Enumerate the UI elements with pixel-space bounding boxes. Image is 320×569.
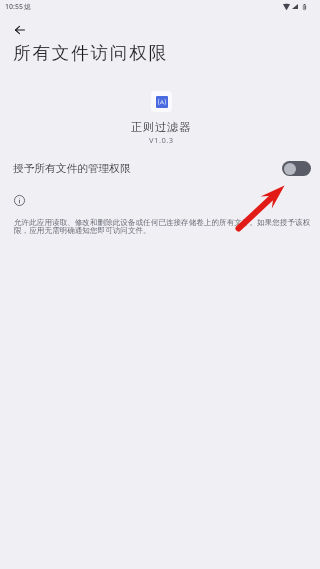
staticText: 所有文件访问权限 [13,42,169,64]
staticText: 10:55 [5,2,23,12]
staticText: 允许此应用读取、修改和删除此设备或任何已连接存储卷上的所有文件。如果您授予该权限… [14,218,314,235]
staticText: 授予所有文件的管理权限 [13,162,131,175]
staticText: 熄 [24,2,31,11]
staticText: V1.0.3 [149,135,174,145]
button[interactable]: 授予所有文件的管理权限 [0,154,320,182]
button[interactable]: Back [6,16,34,44]
staticText: 正则过滤器 [131,120,191,134]
